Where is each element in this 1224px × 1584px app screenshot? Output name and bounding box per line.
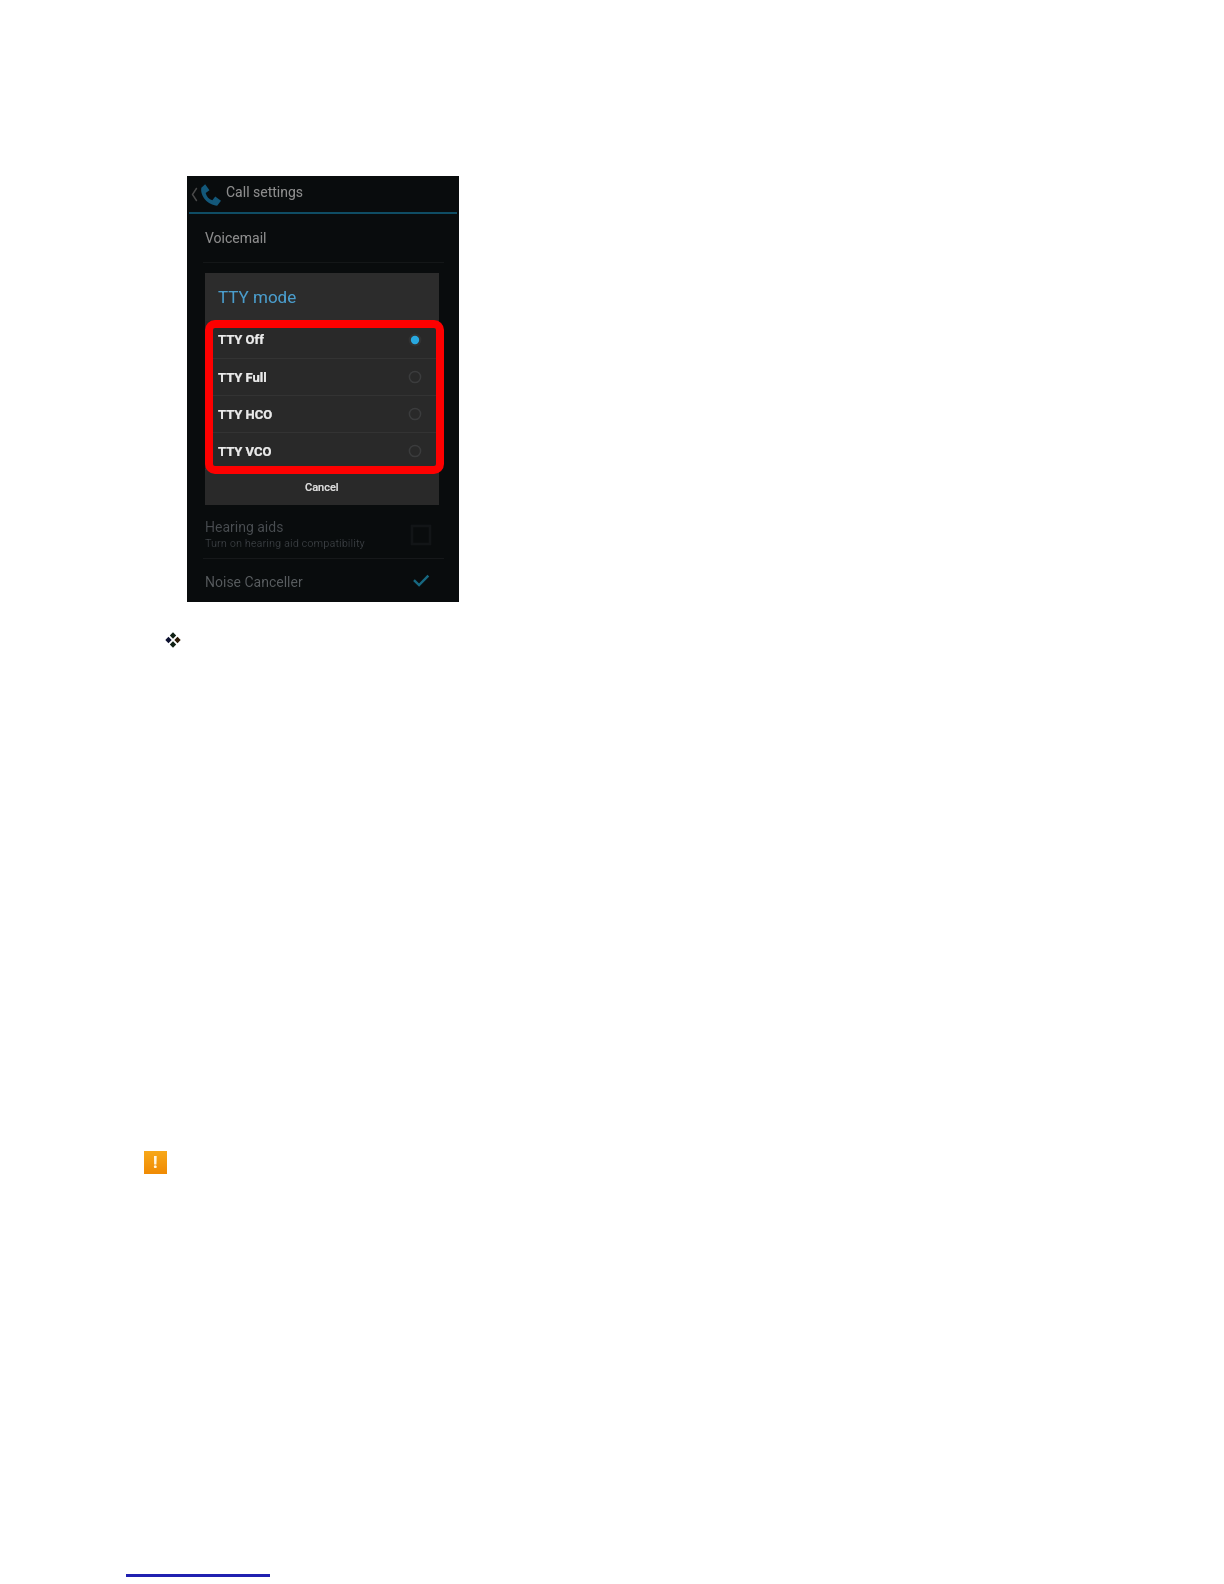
button[interactable]: Back <box>189 178 457 212</box>
button[interactable]: TTY HCO <box>205 396 439 432</box>
staticText: Noise Canceller <box>205 574 303 590</box>
staticText: Voicemail <box>205 230 267 246</box>
staticText: Hearing aids <box>205 519 284 535</box>
staticText: Call settings <box>226 184 304 200</box>
staticText: Turn on hearing aid compatibility <box>205 537 365 550</box>
other: Hearing aids toggle <box>412 526 430 544</box>
other: Figure marker <box>162 629 184 651</box>
other: Phone <box>197 183 221 207</box>
button[interactable]: Cancel <box>205 470 439 505</box>
button[interactable]: TTY VCO <box>205 433 439 469</box>
staticText: TTY Off <box>218 332 264 347</box>
button[interactable]: Noise Canceller <box>189 560 457 601</box>
staticText: Cancel <box>305 481 339 494</box>
button[interactable]: Voicemail <box>189 218 457 262</box>
other: Noise Canceller enabled <box>413 575 429 586</box>
staticText: ! <box>153 1153 158 1172</box>
staticText: TTY mode <box>218 287 297 307</box>
other: Back <box>192 188 197 201</box>
staticText: TTY HCO <box>218 407 273 422</box>
button[interactable]: Hearing aids <box>189 511 457 557</box>
staticText: TTY Full <box>218 370 267 385</box>
button[interactable]: TTY Full <box>205 359 439 395</box>
button[interactable]: TTY Off <box>205 321 439 358</box>
button[interactable]: Warning <box>144 1151 167 1174</box>
staticText: TTY VCO <box>218 444 272 459</box>
